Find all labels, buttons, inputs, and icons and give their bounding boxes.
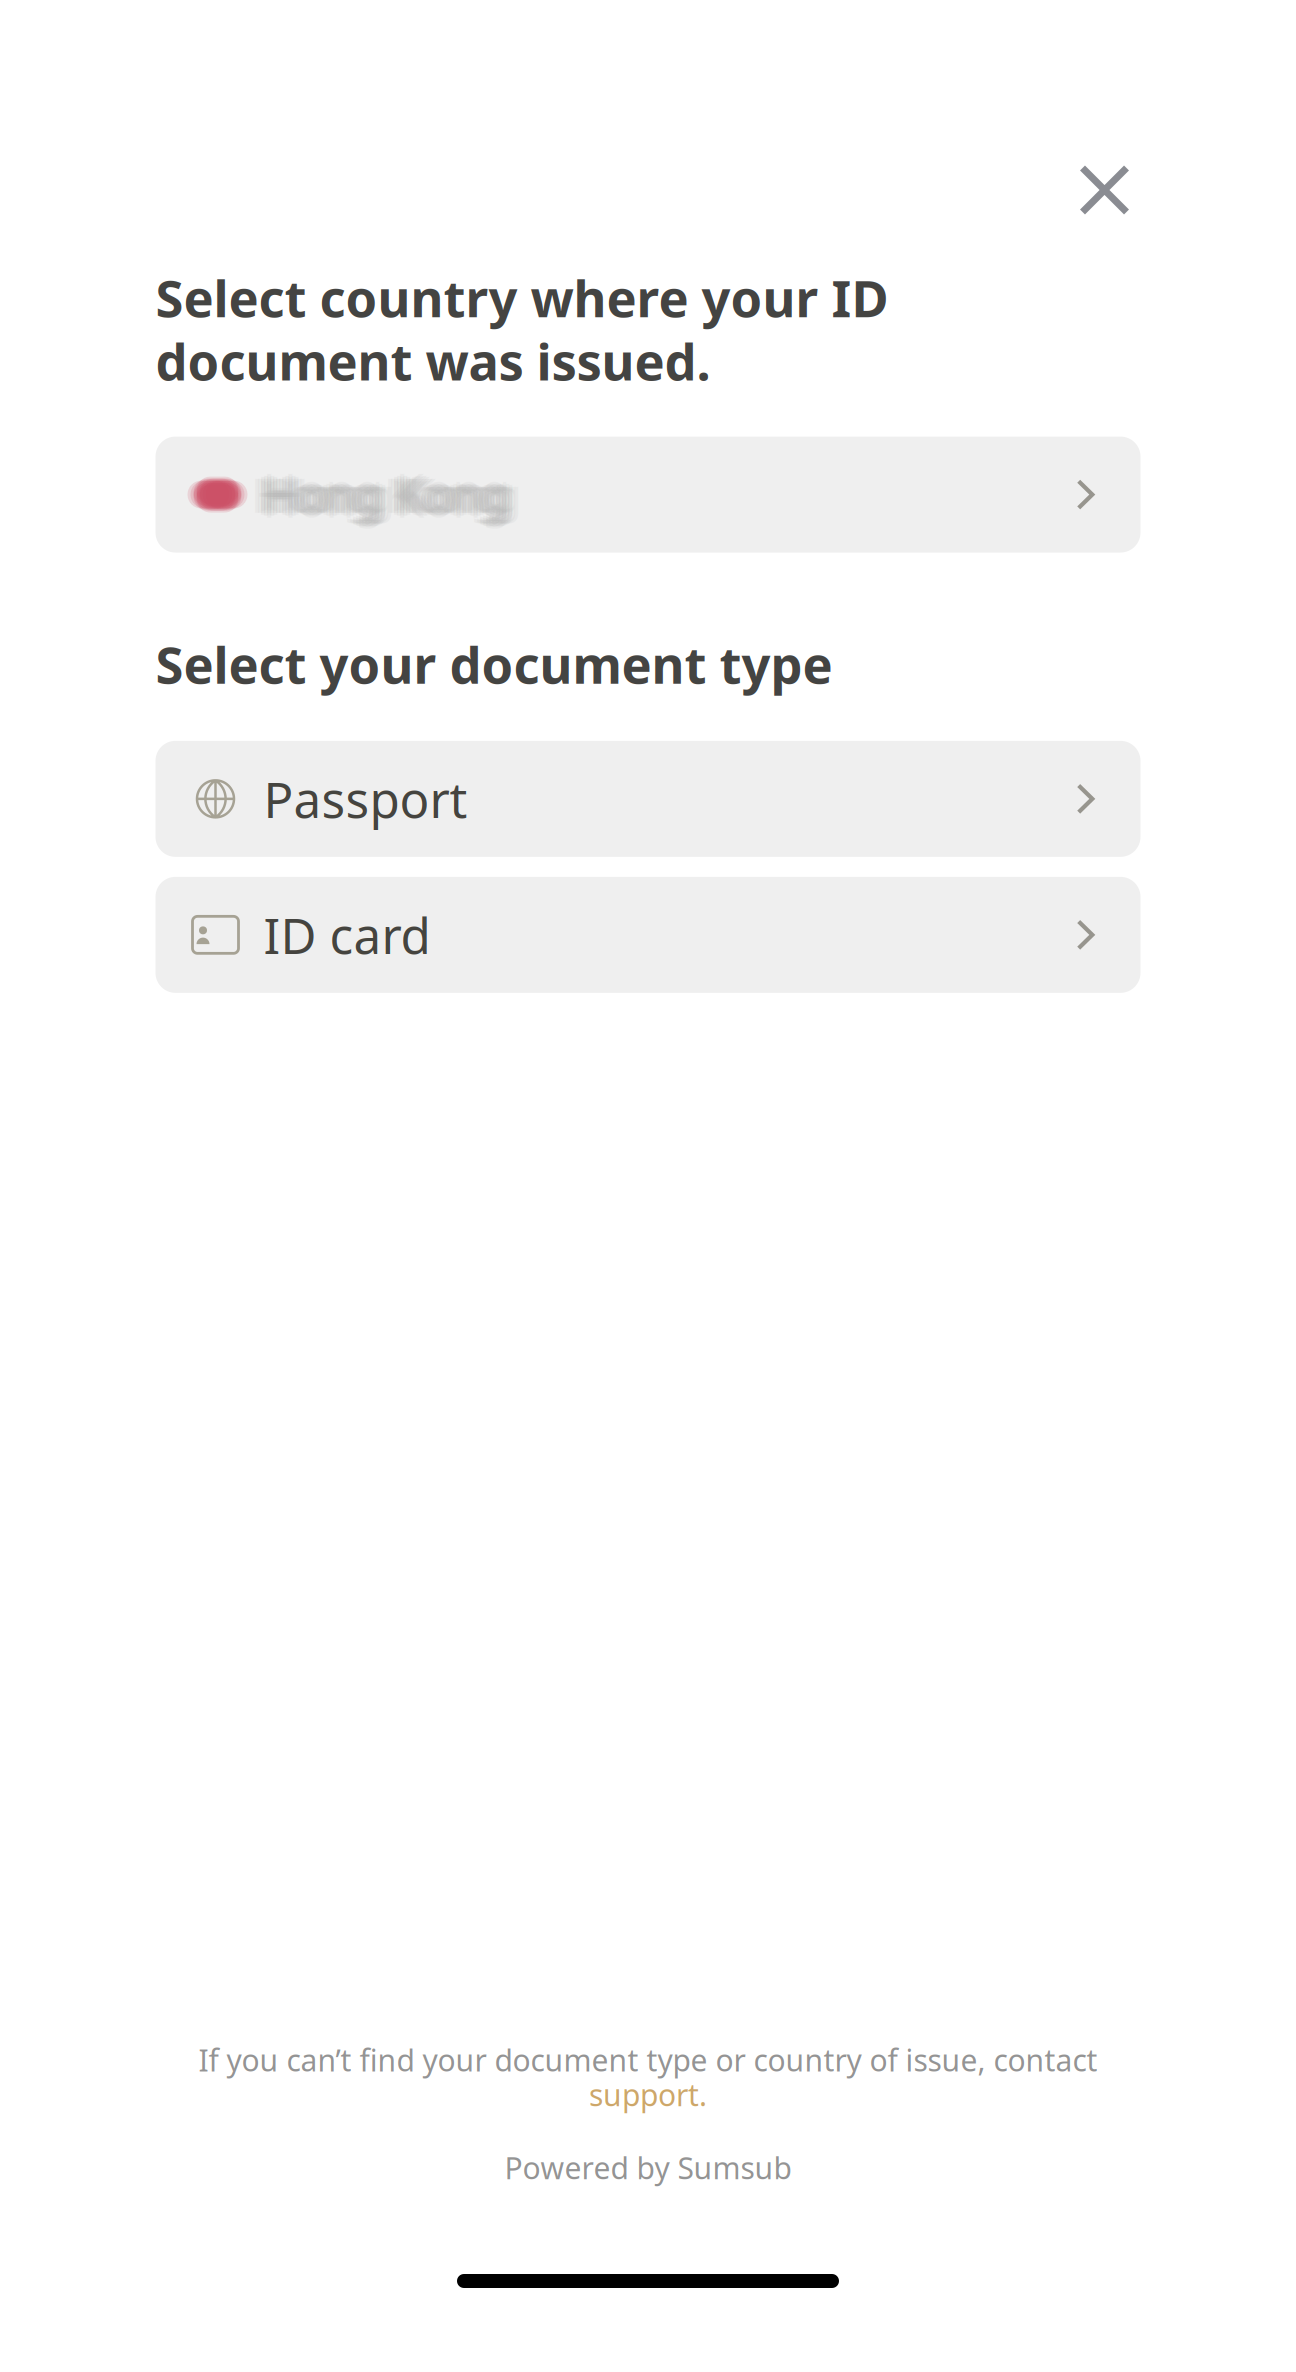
staticText: ID card: [263, 902, 430, 968]
staticText: Powered by Sumsub: [504, 2147, 791, 2188]
staticText: support.: [589, 2074, 707, 2115]
button[interactable]: Close: [1056, 142, 1152, 238]
staticText: If you can’t find your document type or …: [198, 2039, 1097, 2080]
staticText: Hong Kong: [262, 464, 510, 526]
staticText: Passport: [263, 766, 467, 832]
button[interactable]: Passport: [155, 741, 1140, 857]
button[interactable]: Hong Kong: [155, 437, 1140, 553]
staticText: Select your document type: [155, 631, 832, 698]
button[interactable]: ID card: [155, 877, 1140, 993]
staticText: Select country where your ID document wa…: [155, 264, 888, 395]
button[interactable]: support.: [589, 2074, 707, 2115]
